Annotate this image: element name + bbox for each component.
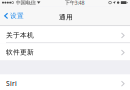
button[interactable]: 软件更新: [0, 43, 130, 60]
staticText: 软件更新: [6, 48, 34, 56]
staticText: 关于本机: [6, 31, 34, 39]
button[interactable]: Siri: [0, 74, 130, 90]
staticText: 通用: [59, 13, 73, 21]
button[interactable]: 关于本机: [0, 26, 130, 43]
staticText: 中国电信: [16, 0, 36, 6]
staticText: 设置: [10, 12, 24, 20]
button[interactable]: 设置: [0, 7, 27, 25]
staticText: Siri: [6, 79, 17, 88]
staticText: 下午3:48: [65, 0, 85, 6]
